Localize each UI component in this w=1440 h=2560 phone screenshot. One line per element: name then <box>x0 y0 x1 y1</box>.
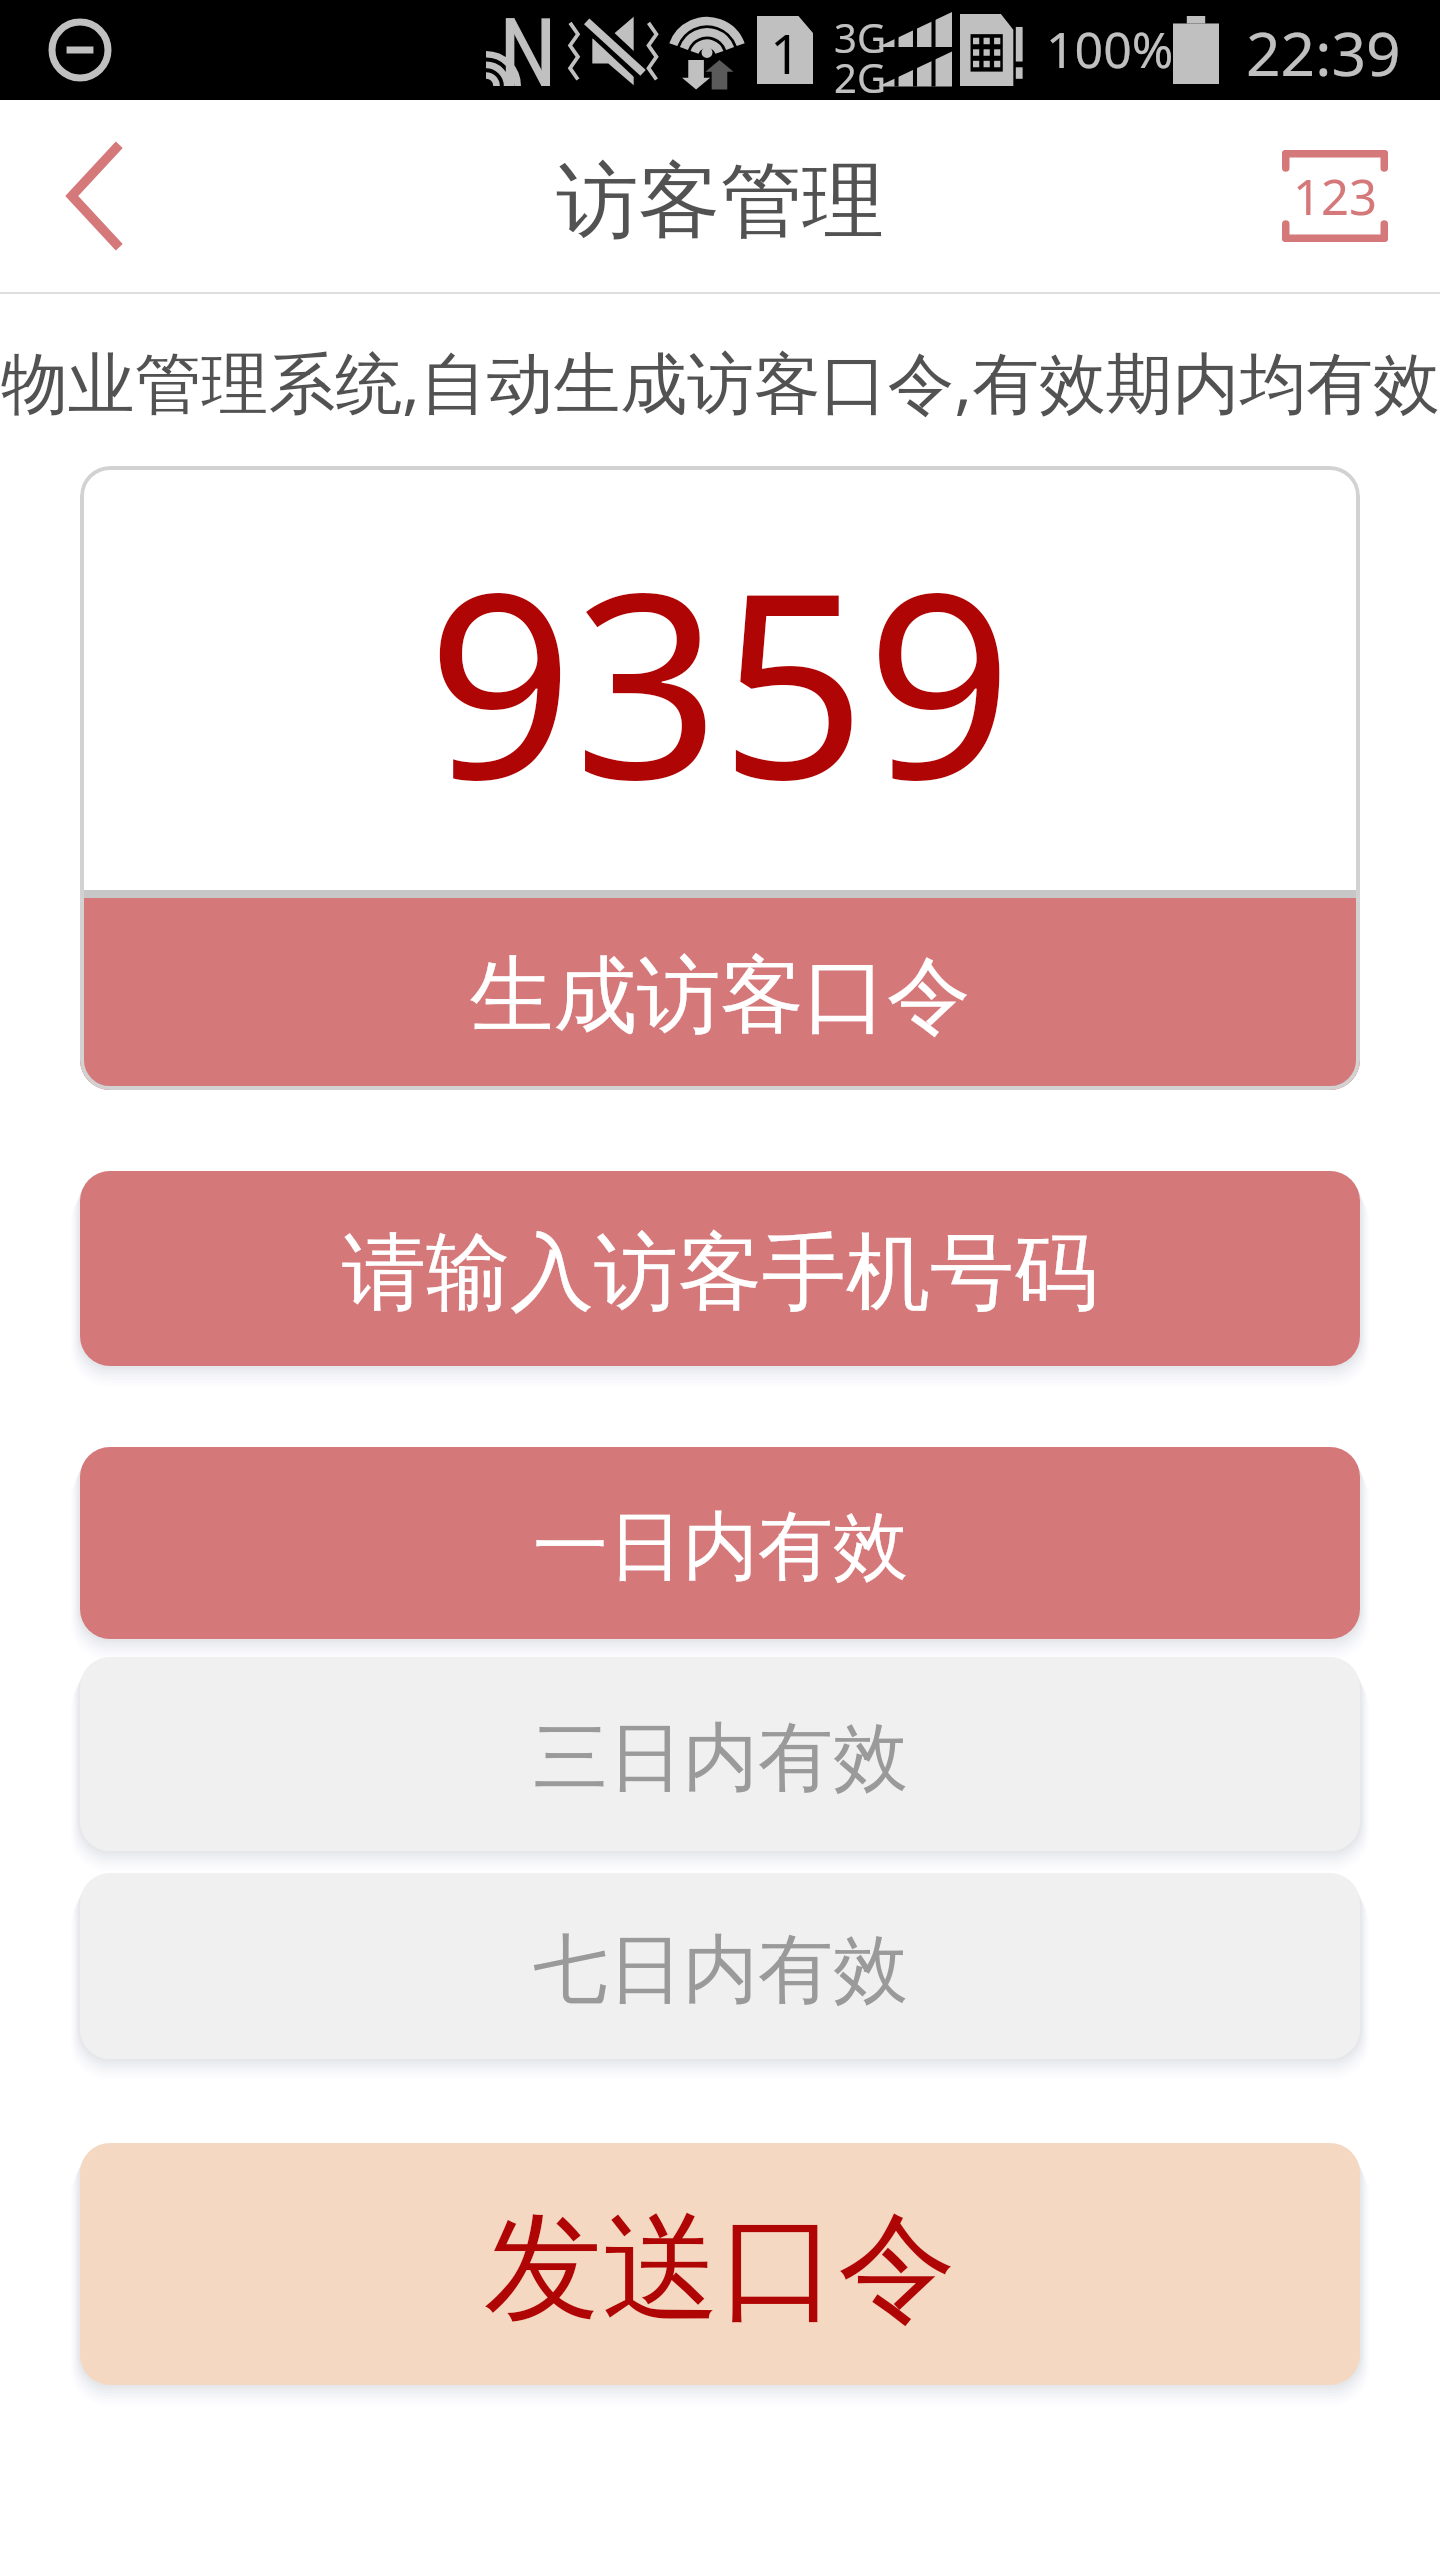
staticText: 9359 <box>427 504 1013 853</box>
staticText: 22:39 <box>1246 11 1401 93</box>
staticText: 发送口令 <box>484 2194 956 2343</box>
staticText: 1 <box>770 16 801 84</box>
button[interactable]: 请输入访客手机号码 <box>80 1171 1360 1366</box>
staticText: 123 <box>1293 163 1378 230</box>
button[interactable]: Scan code <box>1255 100 1415 292</box>
staticText: 物业管理系统,自动生成访客口令,有效期内均有效 <box>1 336 1440 427</box>
staticText: 3G <box>834 10 886 64</box>
staticText: 一日内有效 <box>533 1500 908 1594</box>
staticText: 100% <box>1046 15 1174 83</box>
button[interactable]: 三日内有效 <box>80 1657 1360 1851</box>
button[interactable]: Back <box>15 100 175 292</box>
button[interactable]: 七日内有效 <box>80 1873 1360 2059</box>
button[interactable]: 一日内有效 <box>80 1447 1360 1639</box>
staticText: 七日内有效 <box>533 1923 908 2017</box>
staticText: 2G <box>834 50 886 104</box>
staticText: 三日内有效 <box>533 1711 908 1805</box>
button[interactable]: 生成访客口令 <box>80 898 1360 1090</box>
staticText: 生成访客口令 <box>470 944 971 1049</box>
button[interactable]: 发送口令 <box>80 2143 1360 2385</box>
staticText: 请输入访客手机号码 <box>342 1220 1098 1326</box>
staticText: 访客管理 <box>556 150 884 253</box>
